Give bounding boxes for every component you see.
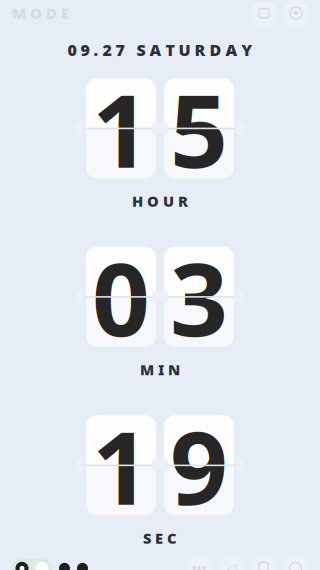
staticText: 1 xyxy=(92,61,150,196)
staticText: ••• xyxy=(192,560,207,570)
button[interactable]: Volume xyxy=(219,556,244,570)
staticText: 0 9 . 2 7 S A T U R D A Y xyxy=(67,39,252,60)
button[interactable]: Theme xyxy=(283,556,308,570)
staticText: 9 xyxy=(170,398,228,533)
staticText: S E C xyxy=(143,528,177,548)
staticText: 3 xyxy=(170,230,228,364)
button[interactable]: More options xyxy=(187,556,212,570)
staticText: 5 xyxy=(170,61,228,196)
button[interactable]: Settings xyxy=(284,1,308,25)
button[interactable]: Screen xyxy=(251,556,276,570)
staticText: M I N xyxy=(140,360,180,379)
staticText: ◁ xyxy=(226,561,236,570)
button[interactable]: Display mode xyxy=(252,1,276,25)
staticText: 1 xyxy=(92,398,150,533)
staticText: 0 xyxy=(92,230,150,364)
staticText: M O D E xyxy=(12,3,69,23)
staticText: H O U R xyxy=(132,191,188,211)
